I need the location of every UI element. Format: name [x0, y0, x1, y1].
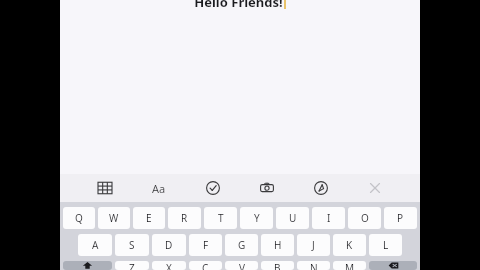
staticText: B [274, 261, 281, 270]
button[interactable]: Close keyboard [364, 177, 386, 199]
button[interactable]: S [115, 234, 149, 256]
button[interactable]: V [225, 261, 258, 270]
button[interactable]: Y [240, 207, 273, 229]
staticText: Q [75, 211, 83, 225]
button[interactable]: M [333, 261, 366, 270]
button[interactable]: N [297, 261, 330, 270]
staticText: U [289, 211, 297, 225]
button[interactable]: R [168, 207, 201, 229]
button[interactable]: C [189, 261, 222, 270]
staticText: C [202, 261, 209, 270]
button[interactable]: P [384, 207, 417, 229]
staticText: Hello Friends! [194, 0, 283, 11]
staticText: E [146, 211, 152, 225]
button[interactable]: H [261, 234, 294, 256]
button[interactable]: O [348, 207, 381, 229]
staticText: L [383, 238, 389, 252]
staticText: T [218, 211, 224, 225]
button[interactable]: L [369, 234, 402, 256]
staticText: P [397, 211, 404, 225]
button[interactable]: Text format [148, 177, 170, 199]
staticText: Aa [152, 181, 166, 195]
button[interactable]: T [204, 207, 237, 229]
button[interactable]: Backspace [369, 261, 417, 270]
staticText: W [109, 211, 119, 225]
button[interactable]: Markup [310, 177, 332, 199]
button[interactable]: U [276, 207, 309, 229]
staticText: V [239, 261, 245, 270]
staticText: J [312, 238, 315, 252]
staticText: S [129, 238, 135, 252]
button[interactable]: E [133, 207, 165, 229]
button[interactable]: Camera [256, 177, 278, 199]
button[interactable]: Z [115, 261, 149, 270]
staticText: Z [129, 261, 135, 270]
button[interactable]: G [225, 234, 258, 256]
staticText: X [166, 261, 172, 270]
button[interactable]: A [78, 234, 112, 256]
button[interactable]: W [98, 207, 130, 229]
staticText: Y [254, 211, 260, 225]
staticText: F [203, 238, 209, 252]
button[interactable]: B [261, 261, 294, 270]
button[interactable]: X [152, 261, 186, 270]
staticText: A [92, 238, 99, 252]
button[interactable]: F [189, 234, 222, 256]
staticText: K [346, 238, 353, 252]
staticText: I [327, 211, 331, 225]
button[interactable]: Q [63, 207, 95, 229]
button[interactable]: Checklist [202, 177, 224, 199]
button[interactable]: Hello Friends! [60, 0, 420, 174]
button[interactable]: J [297, 234, 330, 256]
staticText: O [361, 211, 369, 225]
button[interactable]: Table [94, 177, 116, 199]
staticText: H [274, 238, 282, 252]
staticText: G [238, 238, 246, 252]
staticText: M [345, 261, 355, 270]
button[interactable]: I [312, 207, 345, 229]
button[interactable]: Shift [63, 261, 112, 270]
staticText: R [181, 211, 188, 225]
button[interactable]: K [333, 234, 366, 256]
staticText: D [165, 238, 173, 252]
button[interactable]: D [152, 234, 186, 256]
staticText: N [310, 261, 318, 270]
